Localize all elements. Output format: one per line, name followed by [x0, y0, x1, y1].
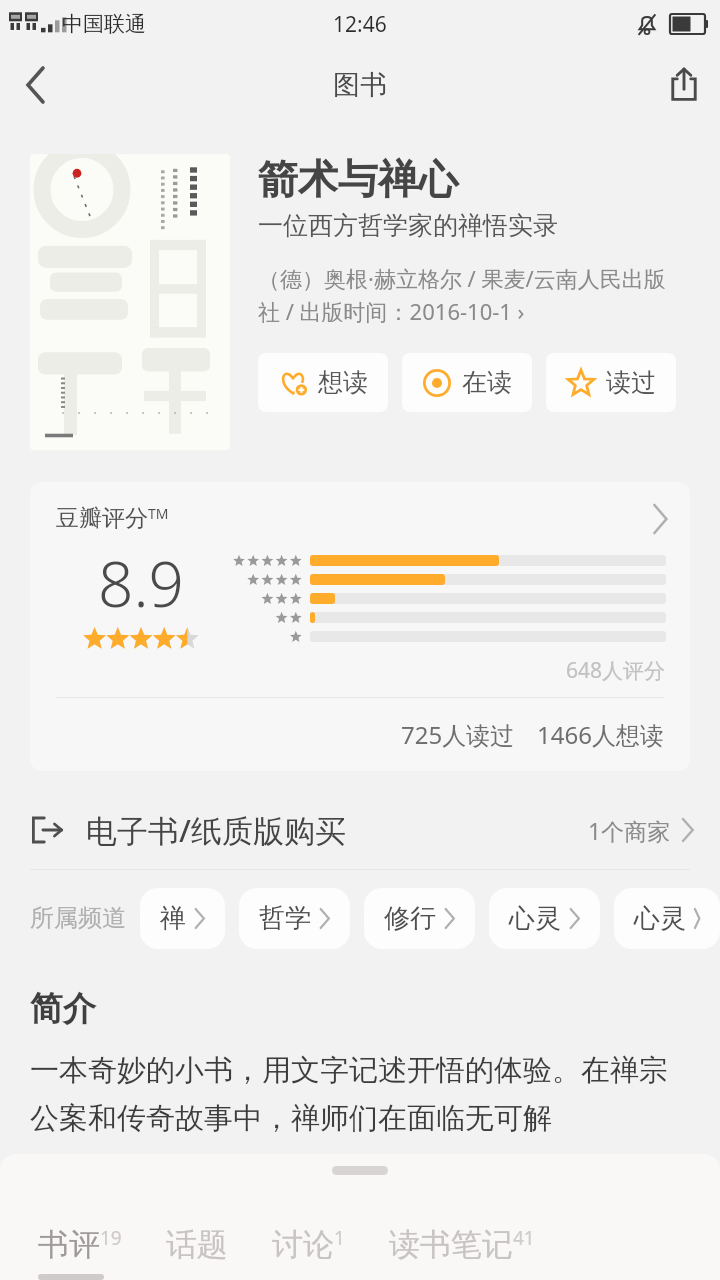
button[interactable]: 禅 — [140, 888, 225, 949]
staticText: 书评 — [38, 1225, 100, 1264]
staticText: 哲学 — [259, 902, 311, 935]
button[interactable]: Back — [0, 49, 72, 121]
button[interactable]: 修行 — [364, 888, 475, 949]
staticText: 中国联通 — [62, 11, 146, 37]
staticText: 豆瓣评分 — [56, 504, 148, 533]
staticText: 讨论 — [272, 1225, 334, 1264]
staticText: 19 — [100, 1225, 122, 1251]
staticText: 648人评分 — [566, 656, 666, 685]
staticText: 1 — [334, 1225, 345, 1251]
staticText: 禅 — [160, 902, 186, 935]
button[interactable]: 读过 — [546, 353, 676, 412]
button[interactable]: 电子书/纸质版购买 — [0, 791, 720, 869]
staticText: 1466人想读 — [537, 718, 664, 751]
staticText: 一本奇妙的小书，用文字记述开悟的体验。在禅宗公案和传奇故事中，禅师们在面临无可解 — [30, 1052, 690, 1136]
staticText: 想读 — [318, 367, 368, 398]
staticText: 电子书/纸质版购买 — [86, 809, 346, 851]
staticText: 读过 — [606, 367, 656, 398]
staticText: 图书 — [333, 68, 387, 102]
staticText: 在读 — [462, 367, 512, 398]
staticText: 12:46 — [333, 10, 387, 39]
button[interactable]: 在读 — [402, 353, 532, 412]
button[interactable]: 心灵 — [489, 888, 600, 949]
staticText: 1个商家 — [588, 815, 671, 846]
button[interactable]: 话题 — [166, 1225, 228, 1274]
staticText: 读书笔记 — [389, 1225, 513, 1264]
button[interactable]: 哲学 — [239, 888, 350, 949]
staticText: 所属频道 — [30, 903, 126, 933]
button[interactable]: 读书笔记 — [389, 1225, 535, 1274]
staticText: 41 — [513, 1225, 535, 1251]
staticText: 心灵 — [509, 902, 561, 935]
staticText: 一位西方哲学家的禅悟实录 — [258, 210, 558, 241]
button[interactable]: 想读 — [258, 353, 388, 412]
staticText: 心灵 — [634, 902, 686, 935]
button[interactable] — [30, 154, 230, 450]
button[interactable]: 豆瓣评分 — [30, 482, 690, 533]
staticText: 话题 — [166, 1225, 228, 1264]
button[interactable]: 书评 — [38, 1225, 122, 1280]
button[interactable]: （德）奥根·赫立格尔 / 果麦/云南人民出版社 / 出版时间：2016-10-1… — [258, 263, 696, 327]
staticText: 8.9 — [98, 541, 184, 625]
staticText: （德）奥根·赫立格尔 / 果麦/云南人民出版社 / 出版时间：2016-10-1… — [258, 263, 696, 327]
button[interactable]: 讨论 — [272, 1225, 345, 1274]
button[interactable]: 心灵 — [614, 888, 720, 949]
staticText: 725人读过 — [401, 718, 515, 751]
button[interactable]: Share — [648, 49, 720, 121]
staticText: 简介 — [30, 988, 96, 1030]
staticText: 箭术与禅心 — [258, 154, 458, 204]
staticText: TM — [148, 504, 169, 523]
staticText: 修行 — [384, 902, 436, 935]
